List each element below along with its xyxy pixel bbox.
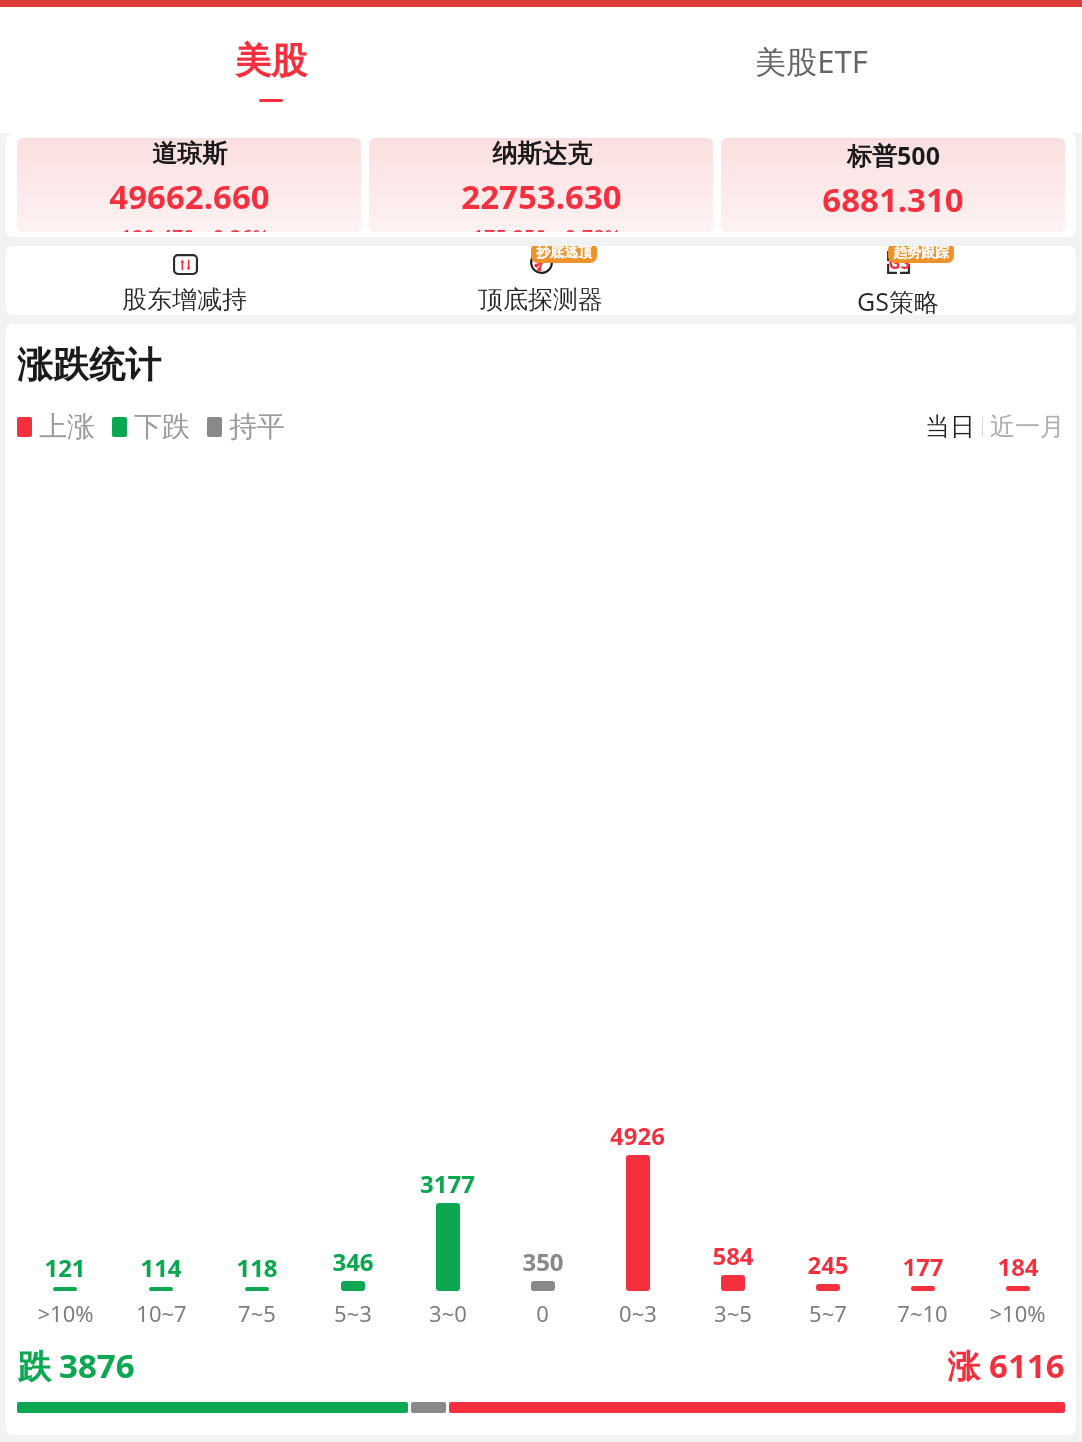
staticText: >10% (989, 1298, 1046, 1328)
staticText: >10% (37, 1298, 94, 1328)
staticText: 49662.660 (109, 174, 270, 219)
staticText: 5~3 (334, 1298, 372, 1328)
staticText: 121 (44, 1251, 86, 1284)
staticText: 184 (997, 1250, 1039, 1283)
staticText: 3177 (420, 1167, 475, 1200)
staticText: 涨跌统计 (17, 342, 161, 387)
staticText: 346 (332, 1245, 374, 1278)
staticText: 股东增减持 (122, 284, 247, 315)
staticText: 0 (536, 1298, 549, 1328)
staticText: 道琼斯 (152, 138, 227, 169)
staticText: 7~5 (238, 1298, 276, 1328)
staticText: 跌 3876 (17, 1343, 135, 1388)
staticText: 0~3 (619, 1298, 657, 1328)
button[interactable]: 近一月 (990, 411, 1065, 442)
button[interactable]: 纳斯达克 (369, 138, 713, 232)
staticText: 持平 (229, 409, 285, 444)
staticText: 4926 (610, 1119, 665, 1152)
staticText: +175.250 (461, 223, 547, 232)
staticText: 当日 (925, 411, 975, 442)
staticText: GS策略 (857, 284, 939, 315)
staticText: 3~0 (429, 1298, 467, 1328)
staticText: 177 (902, 1250, 944, 1283)
staticText: 下跌 (134, 409, 190, 444)
staticText: 上涨 (39, 409, 95, 444)
staticText: 3~5 (714, 1298, 752, 1328)
staticText: 近一月 (990, 411, 1065, 442)
button[interactable]: Shareholder changes (6, 246, 362, 315)
button[interactable]: Top bottom detector (362, 246, 719, 315)
staticText: 584 (712, 1239, 754, 1272)
staticText: +0.26% (201, 223, 270, 232)
staticText: 涨 6116 (947, 1343, 1065, 1388)
staticText: 118 (236, 1251, 278, 1284)
staticText: 245 (807, 1248, 849, 1281)
button[interactable]: 美股 (0, 7, 541, 133)
staticText: 5~7 (809, 1298, 847, 1328)
button[interactable]: 美股ETF (541, 7, 1082, 133)
button[interactable]: 标普500 (721, 138, 1065, 232)
staticText: 7~10 (897, 1298, 948, 1328)
staticText: GS (888, 251, 910, 274)
button[interactable]: 当日 (925, 411, 975, 442)
staticText: 美股ETF (755, 40, 868, 82)
staticText: 趋势跟踪 (893, 246, 949, 262)
staticText: 10~7 (136, 1298, 187, 1328)
staticText: 6881.310 (822, 177, 964, 222)
button[interactable]: 道琼斯 (17, 138, 361, 232)
staticText: 标普500 (847, 138, 940, 172)
staticText: 纳斯达克 (492, 138, 592, 169)
staticText: 抄底逃顶 (536, 246, 592, 262)
staticText: +0.78% (553, 223, 622, 232)
staticText: 22753.630 (461, 174, 622, 219)
staticText: +129.470 (109, 223, 195, 232)
button[interactable]: GS strategy (719, 246, 1076, 315)
staticText: 114 (140, 1251, 182, 1284)
staticText: 350 (522, 1245, 564, 1278)
staticText: 顶底探测器 (478, 284, 603, 315)
staticText: 美股 (235, 38, 307, 83)
